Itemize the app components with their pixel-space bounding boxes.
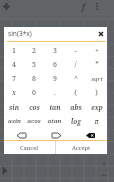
staticText: .	[54, 88, 56, 98]
button[interactable]: -	[65, 42, 86, 56]
button[interactable]: x	[4, 84, 24, 98]
button[interactable]: Move	[1, 1, 11, 11]
staticText: log	[71, 117, 81, 126]
staticText: *	[95, 60, 99, 70]
button[interactable]: 3	[44, 42, 65, 56]
staticText: abs	[70, 103, 82, 112]
staticText: Cancel	[20, 144, 39, 152]
button[interactable]: log	[65, 112, 86, 126]
staticText: cos	[29, 103, 40, 112]
button[interactable]: Functions	[76, 0, 90, 12]
button[interactable]: (	[65, 84, 86, 98]
staticText: 7	[12, 74, 16, 84]
button[interactable]: 5	[24, 56, 44, 70]
button[interactable]: asin	[4, 112, 24, 126]
button[interactable]: Cancel	[4, 141, 55, 154]
button[interactable]: Backspace	[73, 126, 107, 140]
button[interactable]: acos	[24, 112, 44, 126]
button[interactable]: More options	[90, 0, 104, 12]
staticText: asin	[8, 117, 21, 125]
button[interactable]: sin	[4, 98, 24, 112]
button[interactable]: 1	[4, 42, 24, 56]
button[interactable]: /	[65, 56, 86, 70]
button[interactable]: 2	[24, 42, 44, 56]
button[interactable]: )	[86, 84, 107, 98]
button[interactable]: atan	[44, 112, 65, 126]
button[interactable]: Move left	[4, 126, 39, 140]
button[interactable]: 9	[44, 70, 65, 84]
button[interactable]: +	[86, 42, 107, 56]
button[interactable]: Clear	[95, 28, 106, 39]
staticText: Accept	[72, 144, 91, 152]
staticText: x	[12, 88, 16, 98]
button[interactable]: exp	[86, 98, 107, 112]
staticText: 5	[32, 60, 36, 70]
button[interactable]: 8	[24, 70, 44, 84]
button[interactable]: 6	[44, 56, 65, 70]
button[interactable]: Accept	[56, 141, 107, 154]
button[interactable]: cos	[24, 98, 44, 112]
staticText: /	[74, 60, 77, 70]
staticText: sin(3*x)	[8, 29, 32, 38]
button[interactable]: 0	[24, 84, 44, 98]
button[interactable]: sqrt	[86, 70, 107, 84]
staticText: )	[95, 88, 98, 98]
staticText: tan	[49, 103, 61, 112]
staticText: ^	[74, 74, 78, 84]
staticText: 9	[53, 74, 57, 84]
button[interactable]: 4	[4, 56, 24, 70]
button[interactable]: tan	[44, 98, 65, 112]
staticText: 2	[32, 46, 36, 56]
button[interactable]: Move right	[39, 126, 73, 140]
staticText: +	[95, 46, 99, 56]
button[interactable]: ^	[65, 70, 86, 84]
staticText: sin	[9, 103, 19, 112]
staticText: (	[74, 88, 77, 98]
button[interactable]: .	[44, 84, 65, 98]
staticText: 4	[12, 60, 16, 70]
button[interactable]: 7	[4, 70, 24, 84]
staticText: acos	[27, 117, 41, 125]
staticText: f	[82, 0, 85, 12]
staticText: 8	[32, 74, 36, 84]
staticText: 1	[12, 46, 16, 56]
staticText: 6	[53, 60, 57, 70]
staticText: sqrt	[91, 75, 103, 83]
staticText: exp	[91, 103, 103, 112]
staticText: 3	[53, 46, 57, 56]
staticText: atan	[47, 117, 62, 125]
button[interactable]: π	[86, 112, 107, 126]
button[interactable]: abs	[65, 98, 86, 112]
button[interactable]: *	[86, 56, 107, 70]
staticText: -	[74, 46, 77, 56]
staticText: π	[94, 117, 99, 126]
staticText: 0	[32, 88, 36, 98]
